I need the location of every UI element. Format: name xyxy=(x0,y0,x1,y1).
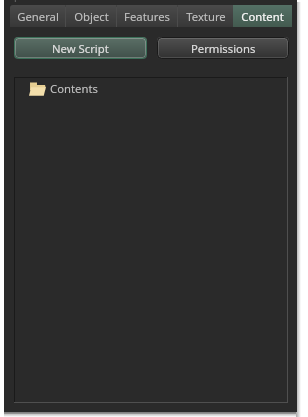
button[interactable]: Features xyxy=(117,5,177,27)
button[interactable]: Content xyxy=(233,5,292,27)
staticText: Permissions xyxy=(191,41,256,56)
staticText: General xyxy=(17,9,59,24)
button[interactable]: Contents xyxy=(15,80,287,96)
button[interactable]: New Script xyxy=(14,37,147,59)
staticText: New Script xyxy=(52,41,109,56)
staticText: Contents xyxy=(50,81,98,96)
button[interactable]: General xyxy=(10,5,65,27)
staticText: Object xyxy=(74,9,109,24)
button[interactable]: Texture xyxy=(178,5,233,27)
staticText: Features xyxy=(124,9,170,24)
staticText: Texture xyxy=(186,9,226,24)
staticText: Content xyxy=(241,9,284,24)
button[interactable]: Permissions xyxy=(157,37,289,59)
button[interactable]: Object xyxy=(66,5,116,27)
staticText: preset xyxy=(14,0,44,2)
